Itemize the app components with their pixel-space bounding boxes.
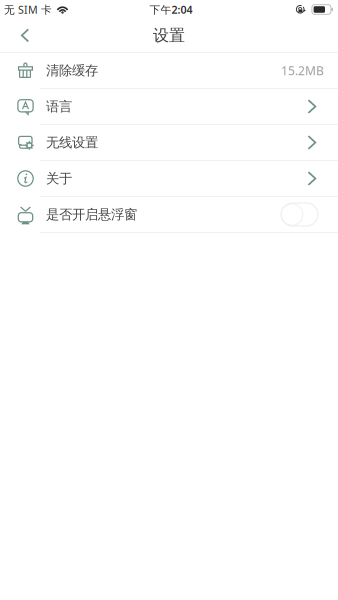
staticText: 设置 xyxy=(153,26,185,45)
button[interactable]: Back xyxy=(0,19,47,52)
button[interactable]: 关于 xyxy=(0,161,338,197)
button[interactable]: 是否开启悬浮窗 xyxy=(0,197,338,233)
staticText: 15.2MB xyxy=(281,62,324,78)
staticText: 是否开启悬浮窗 xyxy=(46,206,137,223)
button[interactable]: 语言 xyxy=(0,89,338,125)
staticText: 语言 xyxy=(46,98,72,115)
staticText: 关于 xyxy=(46,170,72,187)
staticText: 无线设置 xyxy=(46,134,98,151)
staticText: 下午2:04 xyxy=(149,2,192,17)
button[interactable]: 无线设置 xyxy=(0,125,338,161)
staticText: 清除缓存 xyxy=(46,62,98,79)
button[interactable]: 清除缓存 xyxy=(0,53,338,89)
staticText: 无 SIM 卡 xyxy=(4,2,52,17)
